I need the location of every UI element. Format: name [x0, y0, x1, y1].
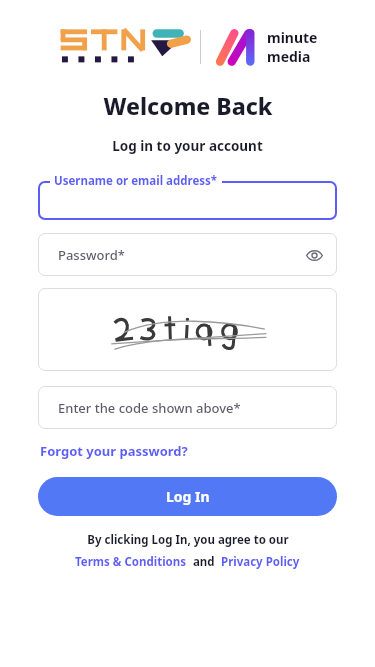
- staticText: Log in to your account: [112, 137, 263, 155]
- button[interactable]: Show password: [297, 238, 331, 272]
- staticText: Forgot your password?: [40, 442, 188, 460]
- staticText: media: [267, 47, 311, 66]
- button[interactable]: Terms & Conditions: [75, 554, 187, 570]
- staticText: and: [187, 554, 221, 570]
- staticText: Password*: [58, 246, 297, 264]
- button[interactable]: Forgot your password?: [40, 442, 188, 460]
- button[interactable]: Username or email address*: [38, 173, 337, 220]
- staticText: minute: [267, 28, 318, 47]
- staticText: Privacy Policy: [221, 554, 300, 570]
- staticText: Terms & Conditions: [75, 554, 187, 570]
- staticText: Enter the code shown above*: [58, 399, 241, 417]
- staticText: By clicking Log In, you agree to our: [87, 532, 289, 548]
- staticText: Log In: [166, 487, 210, 506]
- button[interactable]: Password*: [38, 233, 337, 276]
- staticText: Welcome Back: [103, 90, 273, 121]
- button[interactable]: Log In: [38, 477, 337, 516]
- button[interactable]: Enter the code shown above*: [38, 386, 337, 429]
- button[interactable]: Privacy Policy: [221, 554, 300, 570]
- staticText: Username or email address*: [54, 173, 218, 189]
